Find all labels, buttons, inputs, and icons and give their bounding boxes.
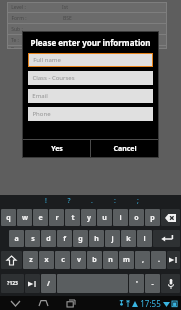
button[interactable]: o — [129, 209, 144, 226]
staticText: Te : — [11, 37, 19, 44]
staticText: s — [31, 234, 35, 244]
staticText: b — [92, 255, 97, 265]
staticText: Pu : — [11, 46, 20, 49]
staticText: a — [14, 234, 19, 244]
button[interactable]: q — [1, 209, 16, 226]
button[interactable]: j — [105, 230, 120, 247]
staticText: Level : — [11, 4, 26, 11]
button[interactable]: e — [33, 209, 48, 226]
staticText: Phone — [32, 110, 51, 118]
button[interactable]: d — [41, 230, 56, 247]
staticText: n — [108, 255, 113, 265]
button[interactable]: ? — [57, 195, 80, 207]
button[interactable]: ' — [129, 274, 144, 293]
staticText: ; — [137, 196, 139, 206]
button[interactable]: Cancel — [91, 140, 158, 157]
button[interactable]: t — [65, 209, 80, 226]
button[interactable]: y — [81, 209, 96, 226]
staticText: : — [114, 196, 116, 206]
button[interactable]: p — [145, 209, 160, 226]
button[interactable]: , — [135, 251, 150, 269]
staticText: c — [61, 255, 65, 265]
staticText: f — [63, 234, 66, 244]
button[interactable]: v — [71, 251, 86, 269]
button[interactable]: Backspace — [161, 209, 180, 226]
staticText: Form : — [11, 15, 27, 22]
staticText: t — [71, 213, 75, 223]
button[interactable]: b — [87, 251, 102, 269]
button[interactable]: u — [97, 209, 112, 226]
button[interactable]: ! — [34, 195, 57, 207]
staticText: z — [29, 255, 33, 265]
staticText: Email — [32, 92, 48, 100]
button[interactable]: . — [151, 251, 166, 269]
button[interactable]: r — [49, 209, 64, 226]
staticText: ' — [136, 279, 138, 289]
button[interactable]: x — [39, 251, 54, 269]
staticText: BSE — [63, 15, 72, 22]
button[interactable]: n — [103, 251, 118, 269]
staticText: y — [87, 213, 91, 223]
staticText: x — [44, 255, 49, 265]
staticText: . — [158, 255, 160, 265]
button[interactable]: Tab — [167, 251, 180, 269]
button[interactable]: l — [137, 230, 152, 247]
staticText: ? — [67, 196, 71, 206]
button[interactable]: Home — [36, 296, 50, 310]
button[interactable]: Voice input — [161, 274, 180, 293]
button[interactable]: Recents — [64, 296, 78, 310]
staticText: r — [55, 213, 59, 223]
button[interactable]: w — [17, 209, 32, 226]
staticText: g — [78, 234, 83, 244]
button[interactable]: Yes — [23, 140, 90, 157]
staticText: j — [111, 234, 114, 244]
staticText: Please enter your information — [30, 37, 151, 48]
button[interactable]: Phone — [28, 107, 153, 121]
button[interactable]: : — [103, 195, 126, 207]
button[interactable]: / — [41, 274, 56, 293]
staticText: d — [46, 234, 51, 244]
staticText: Full name — [33, 56, 61, 64]
button[interactable]: Full name — [29, 54, 152, 66]
staticText: q — [6, 213, 11, 223]
staticText: h — [94, 234, 99, 244]
staticText: 17:55 — [140, 298, 161, 309]
staticText: o — [134, 213, 139, 223]
staticText: i — [119, 213, 122, 223]
button[interactable]: Enter — [153, 230, 180, 247]
staticText: l — [143, 234, 146, 244]
button[interactable]: s — [25, 230, 40, 247]
button[interactable]: i — [113, 209, 128, 226]
staticText: . — [91, 196, 93, 206]
button[interactable]: c — [55, 251, 70, 269]
button[interactable]: ; — [126, 195, 149, 207]
button[interactable]: z — [23, 251, 38, 269]
button[interactable]: Back — [8, 296, 22, 310]
button[interactable]: Email — [28, 89, 153, 103]
button[interactable]: m — [119, 251, 134, 269]
staticText: w — [22, 213, 28, 223]
staticText: Ist — [62, 4, 68, 11]
button[interactable]: Tab — [25, 274, 40, 293]
button[interactable]: Class - Courses — [28, 71, 153, 85]
staticText: ?123 — [7, 280, 18, 287]
button[interactable]: . — [80, 195, 103, 207]
staticText: u — [102, 213, 107, 223]
staticText: k — [126, 234, 131, 244]
button[interactable]: k — [121, 230, 136, 247]
button[interactable]: a — [9, 230, 24, 247]
staticText: v — [77, 255, 81, 265]
staticText: e — [38, 213, 43, 223]
staticText: Yes — [51, 144, 63, 154]
button[interactable]: ?123 — [1, 274, 24, 293]
button[interactable]: g — [73, 230, 88, 247]
staticText: , — [142, 255, 144, 265]
staticText: Sub : — [11, 26, 23, 33]
button[interactable]: - — [145, 274, 160, 293]
button[interactable]: f — [57, 230, 72, 247]
button[interactable]: Shift — [1, 251, 22, 269]
staticText: m — [123, 255, 130, 265]
button[interactable]: h — [89, 230, 104, 247]
staticText: - — [151, 279, 154, 289]
